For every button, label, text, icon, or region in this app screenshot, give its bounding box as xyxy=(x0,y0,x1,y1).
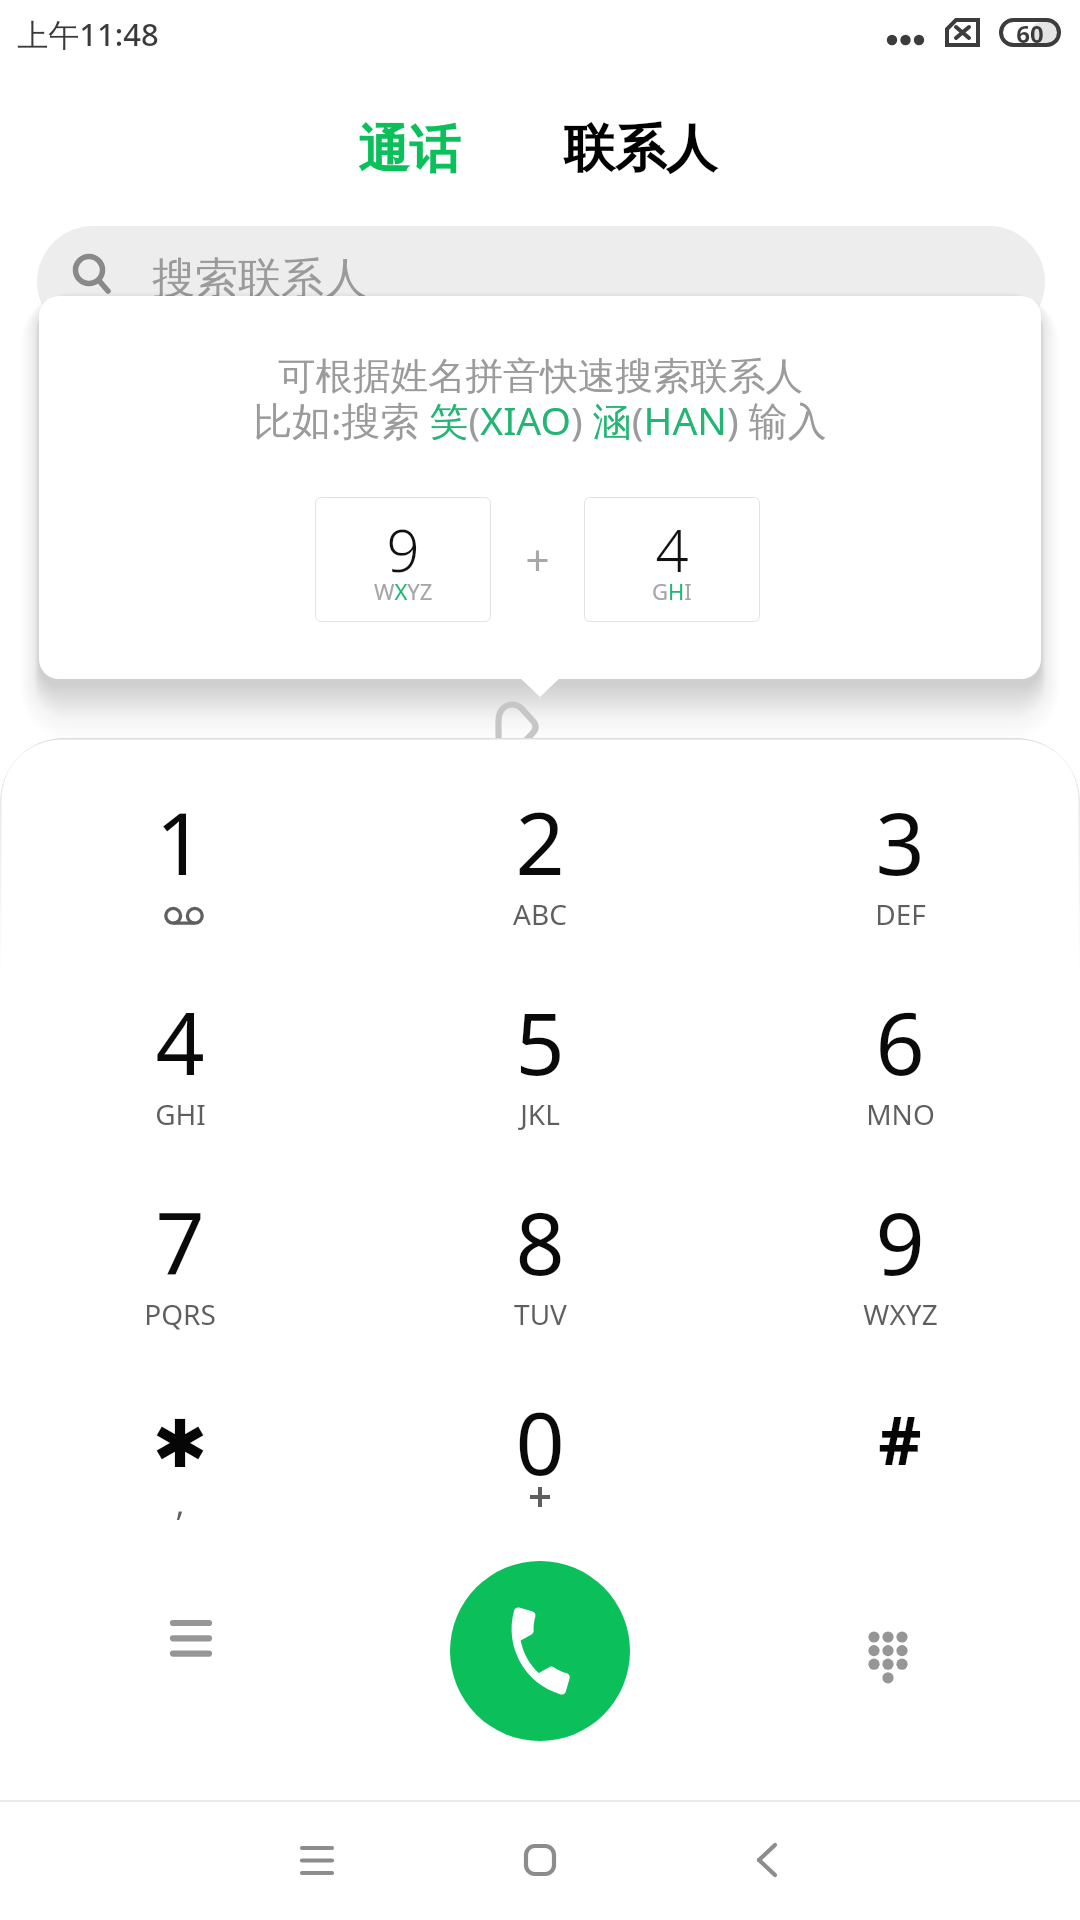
staticText: ABC xyxy=(513,895,567,933)
button[interactable]: # xyxy=(720,1338,1080,1538)
button[interactable]: 2 xyxy=(360,738,720,938)
button[interactable]: 通话 xyxy=(358,118,460,182)
staticText: 可根据姓名拼音快速搜索联系人 xyxy=(278,353,803,400)
staticText: 3 xyxy=(875,783,925,900)
staticText: PQRS xyxy=(144,1295,216,1333)
staticText: , xyxy=(175,1480,185,1526)
button[interactable]: 联系人 xyxy=(564,117,717,181)
staticText: JKL xyxy=(520,1095,560,1133)
staticText: DEF xyxy=(875,895,926,933)
staticText: WXYZ xyxy=(863,1295,938,1333)
button[interactable]: 0 xyxy=(360,1338,720,1538)
button[interactable]: 搜索联系人 xyxy=(37,226,1045,338)
button[interactable]: 6 xyxy=(720,938,1080,1138)
button[interactable]: 8 xyxy=(360,1138,720,1338)
staticText: ✱ xyxy=(152,1406,208,1483)
button[interactable]: ✱ xyxy=(0,1338,360,1538)
staticText: 联系人 xyxy=(564,117,717,181)
button[interactable]: 5 xyxy=(360,938,720,1138)
button[interactable]: 1 xyxy=(0,738,360,938)
staticText: 比如:搜索 笑(XIAO) 涵(HAN) 输入 xyxy=(253,393,827,446)
staticText: 上午11:48 xyxy=(17,13,159,55)
staticText: 0 xyxy=(515,1383,565,1500)
button[interactable]: 4 xyxy=(0,938,360,1138)
button[interactable]: 3 xyxy=(720,738,1080,938)
button[interactable]: Home xyxy=(480,1800,600,1920)
staticText: 8 xyxy=(515,1183,565,1300)
staticText: MNO xyxy=(866,1095,935,1133)
button[interactable]: Back xyxy=(707,1800,827,1920)
staticText: 7 xyxy=(155,1183,205,1300)
staticText: 9 xyxy=(875,1183,925,1300)
button[interactable]: Keypad xyxy=(838,1601,938,1701)
staticText: 60 xyxy=(1016,17,1044,46)
staticText: 搜索联系人 xyxy=(152,252,367,306)
button[interactable]: Call log xyxy=(141,1588,241,1688)
staticText: 6 xyxy=(875,983,925,1100)
staticText: 通话 xyxy=(358,118,460,182)
staticText: 1 xyxy=(155,783,205,900)
staticText: GHI xyxy=(155,1095,206,1133)
staticText: 4 xyxy=(655,510,689,589)
button[interactable]: 7 xyxy=(0,1138,360,1338)
staticText: # xyxy=(878,1393,922,1484)
button[interactable]: 9 xyxy=(720,1138,1080,1338)
staticText: 9 xyxy=(386,510,420,589)
button[interactable]: Recents xyxy=(257,1800,377,1920)
staticText: GHI xyxy=(652,576,692,606)
staticText: WXYZ xyxy=(374,576,433,606)
staticText: 4 xyxy=(155,983,205,1100)
staticText: 2 xyxy=(515,783,565,900)
staticText: 5 xyxy=(515,983,565,1100)
staticText: + xyxy=(525,531,550,588)
staticText: TUV xyxy=(514,1295,567,1333)
button[interactable]: Call xyxy=(450,1561,630,1741)
